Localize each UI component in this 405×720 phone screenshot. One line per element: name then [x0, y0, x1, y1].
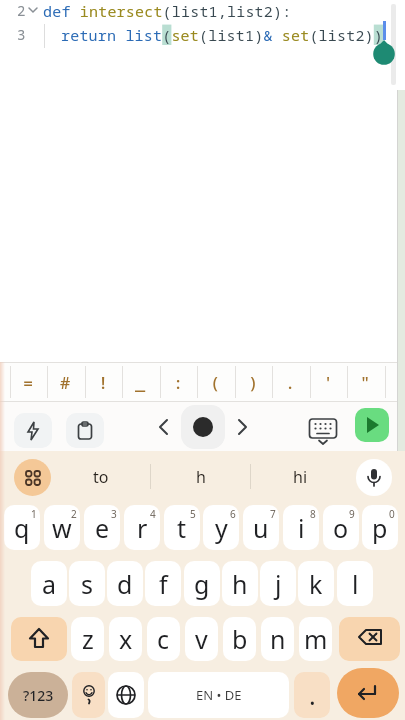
- staticText: w: [52, 511, 72, 545]
- staticText: i: [298, 511, 305, 545]
- button[interactable]: [158, 419, 170, 435]
- staticText: ?123: [23, 686, 54, 705]
- button[interactable]: x: [109, 617, 142, 661]
- button[interactable]: a: [31, 561, 67, 606]
- button[interactable]: z: [71, 617, 104, 661]
- staticText: ): [248, 371, 259, 394]
- button[interactable]: [356, 459, 392, 496]
- button[interactable]: v: [185, 617, 218, 661]
- staticText: return list(set(list1)& set(list2)): [61, 25, 384, 45]
- staticText: d: [117, 567, 133, 601]
- staticText: p: [372, 511, 388, 545]
- button[interactable]: [181, 405, 225, 449]
- button[interactable]: #: [47, 362, 84, 402]
- button[interactable]: [11, 617, 67, 661]
- button[interactable]: (: [197, 362, 234, 402]
- button[interactable]: m: [299, 617, 332, 661]
- staticText: 1: [31, 507, 37, 521]
- staticText: #: [60, 371, 71, 394]
- staticText: 3: [111, 507, 117, 521]
- staticText: (: [210, 371, 221, 394]
- button[interactable]: [14, 459, 51, 496]
- button[interactable]: !: [85, 362, 122, 402]
- button[interactable]: n: [261, 617, 294, 661]
- staticText: u: [253, 511, 269, 545]
- button[interactable]: r: [124, 505, 160, 550]
- staticText: 2: [17, 1, 26, 20]
- button[interactable]: [108, 672, 144, 718]
- button[interactable]: i: [283, 505, 319, 550]
- button[interactable]: [66, 413, 104, 448]
- button[interactable]: to: [60, 451, 142, 502]
- button[interactable]: f: [145, 561, 181, 606]
- staticText: =: [23, 371, 34, 394]
- button[interactable]: [339, 617, 400, 661]
- button[interactable]: j: [260, 561, 296, 606]
- button[interactable]: =: [10, 362, 47, 402]
- staticText: l: [352, 567, 359, 601]
- staticText: 5: [190, 507, 196, 521]
- button[interactable]: [337, 668, 399, 718]
- staticText: to: [93, 466, 109, 488]
- button[interactable]: EN • DE: [148, 672, 289, 718]
- button[interactable]: b: [223, 617, 256, 661]
- button[interactable]: .: [294, 672, 330, 718]
- staticText: y: [215, 511, 228, 545]
- staticText: _: [135, 371, 146, 394]
- button[interactable]: ": [347, 362, 384, 402]
- staticText: 0: [389, 507, 395, 521]
- staticText: 3: [17, 25, 26, 44]
- button[interactable]: s: [69, 561, 105, 606]
- button[interactable]: d: [107, 561, 143, 606]
- button[interactable]: e: [84, 505, 120, 550]
- staticText: k: [309, 567, 323, 601]
- staticText: !: [98, 371, 109, 394]
- button[interactable]: y: [203, 505, 239, 550]
- staticText: 4: [150, 507, 156, 521]
- staticText: f: [159, 567, 168, 601]
- button[interactable]: .: [272, 362, 309, 402]
- button[interactable]: [236, 419, 248, 435]
- staticText: 2: [71, 507, 77, 521]
- button[interactable]: ): [235, 362, 272, 402]
- button[interactable]: _: [122, 362, 159, 402]
- staticText: b: [232, 622, 248, 656]
- staticText: o: [333, 511, 349, 545]
- button[interactable]: w: [44, 505, 80, 550]
- button[interactable]: c: [147, 617, 180, 661]
- staticText: h: [196, 466, 206, 488]
- button[interactable]: g: [184, 561, 220, 606]
- button[interactable]: hi: [251, 451, 350, 502]
- button[interactable]: u: [243, 505, 279, 550]
- staticText: g: [194, 567, 210, 601]
- button[interactable]: ': [310, 362, 347, 402]
- button[interactable]: :: [160, 362, 197, 402]
- button[interactable]: k: [298, 561, 334, 606]
- button[interactable]: [72, 672, 105, 718]
- staticText: e: [95, 511, 110, 545]
- staticText: j: [275, 567, 282, 601]
- staticText: c: [157, 622, 170, 656]
- staticText: m: [304, 622, 328, 656]
- staticText: v: [195, 622, 208, 656]
- button[interactable]: h: [222, 561, 258, 606]
- button[interactable]: ?123: [8, 672, 68, 718]
- button[interactable]: t: [164, 505, 200, 550]
- staticText: a: [42, 567, 57, 601]
- staticText: .: [309, 678, 316, 712]
- button[interactable]: h: [151, 451, 250, 502]
- button[interactable]: [355, 408, 389, 442]
- staticText: n: [270, 622, 286, 656]
- button[interactable]: [306, 414, 340, 446]
- button[interactable]: q: [4, 505, 40, 550]
- staticText: :: [173, 371, 184, 394]
- button[interactable]: l: [337, 561, 373, 606]
- button[interactable]: o: [323, 505, 359, 550]
- staticText: r: [137, 511, 148, 545]
- staticText: z: [82, 622, 94, 656]
- staticText: ': [323, 371, 334, 394]
- button[interactable]: [14, 413, 52, 448]
- button[interactable]: p: [362, 505, 398, 550]
- staticText: 8: [310, 507, 316, 521]
- staticText: h: [232, 567, 248, 601]
